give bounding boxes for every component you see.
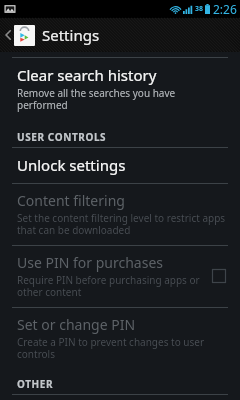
staticText: OTHER	[17, 377, 54, 391]
button[interactable]: Set or change PIN	[0, 308, 240, 369]
staticText: Remove all the searches you have perform…	[17, 86, 226, 112]
staticText: Set the content filtering level to restr…	[17, 211, 226, 237]
button[interactable]: Navigate up	[0, 18, 240, 52]
staticText: Settings	[42, 25, 100, 45]
staticText: 38	[195, 4, 204, 14]
staticText: Require PIN before purchasing apps or ot…	[17, 273, 204, 299]
staticText: Content filtering	[17, 191, 125, 210]
staticText: USER CONTROLS	[17, 130, 107, 144]
button[interactable]: Content filtering	[0, 184, 240, 245]
staticText: Unlock settings	[17, 155, 126, 175]
button[interactable]: Use PIN for purchases	[0, 246, 240, 307]
staticText: Create a PIN to prevent changes to user …	[17, 335, 226, 361]
button[interactable]: Clear search history	[0, 58, 240, 120]
staticText: Use PIN for purchases	[17, 253, 163, 272]
staticText: 2:26	[213, 1, 237, 17]
staticText: Clear search history	[17, 65, 157, 85]
button[interactable]: Unlock settings	[0, 148, 240, 183]
staticText: Set or change PIN	[17, 315, 136, 334]
